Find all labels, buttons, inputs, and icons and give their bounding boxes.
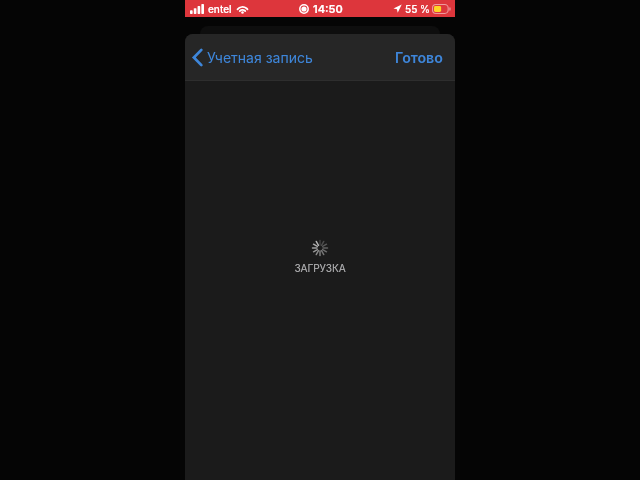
- other: Wi-Fi connected: [236, 4, 249, 14]
- staticText: Учетная запись: [207, 49, 313, 66]
- other: Battery 55 percent, low power mode: [432, 4, 451, 14]
- staticText: entel: [208, 3, 232, 15]
- other: Loading: [312, 240, 328, 256]
- staticText: 55 %: [405, 3, 430, 15]
- button[interactable]: Готово: [383, 34, 455, 81]
- staticText: Готово: [395, 49, 443, 66]
- button[interactable]: Учетная запись: [185, 34, 319, 81]
- other: Screen recording active: [299, 4, 309, 14]
- other: Location services in use: [393, 4, 402, 13]
- staticText: ЗАГРУЗКА: [294, 262, 346, 274]
- other: Cellular signal strength: [190, 4, 204, 14]
- staticText: 14:50: [313, 2, 343, 15]
